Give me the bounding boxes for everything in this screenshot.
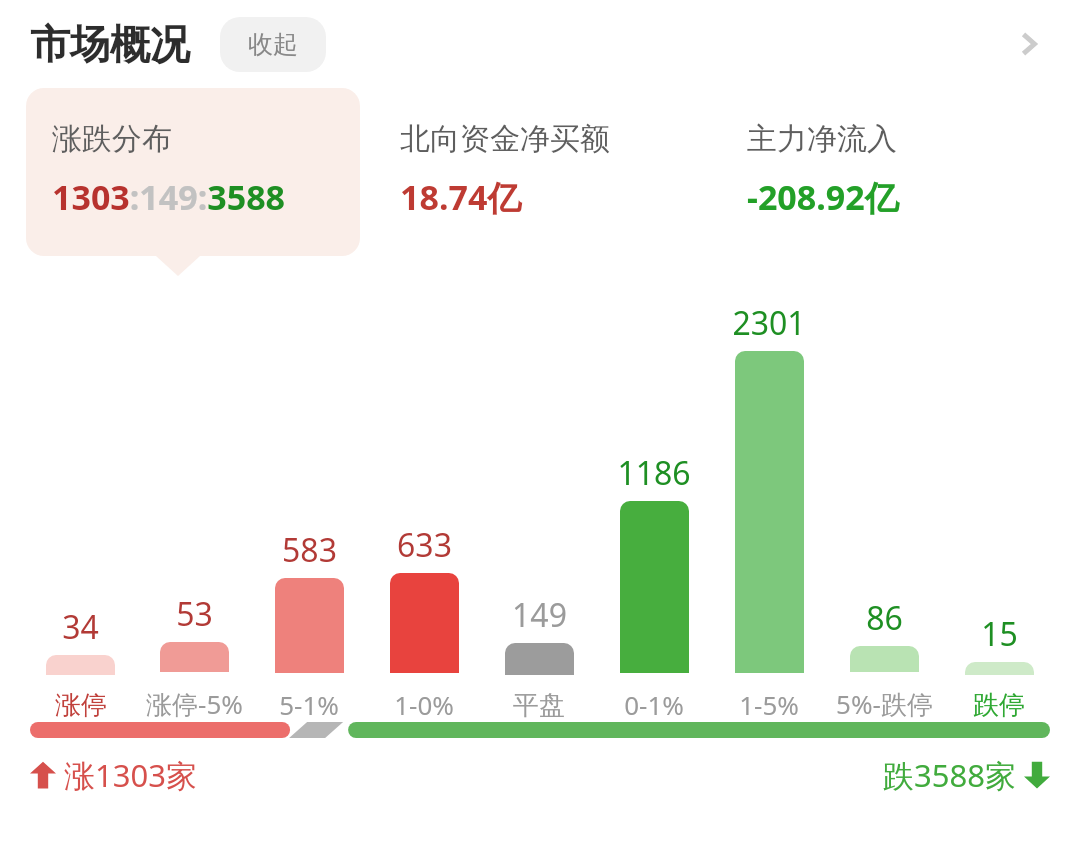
other: 上涨	[30, 760, 56, 790]
staticText: 18.74亿	[400, 174, 522, 220]
staticText: 5%-跌停	[836, 686, 933, 722]
staticText: 涨1303家	[64, 754, 197, 796]
staticText: 15	[981, 612, 1018, 656]
staticText: 86	[866, 596, 903, 640]
staticText: 1-0%	[394, 687, 454, 722]
staticText: 涨停	[55, 689, 107, 722]
staticText: 涨停-5%	[146, 686, 243, 722]
staticText: 1303:149:3588	[52, 174, 286, 220]
staticText: 5-1%	[279, 687, 339, 722]
other: 下跌	[1024, 760, 1050, 790]
staticText: 583	[282, 528, 337, 572]
staticText: 0-1%	[624, 687, 684, 722]
staticText: 北向资金净买额	[400, 120, 610, 158]
staticText: 1186	[617, 451, 691, 495]
staticText: 涨跌分布	[52, 120, 172, 158]
staticText: 149	[512, 593, 567, 637]
button[interactable]: 收起	[220, 17, 326, 72]
button[interactable]: 主力净流入	[721, 88, 1054, 256]
staticText: 收起	[248, 29, 298, 60]
button[interactable]: 查看更多	[1000, 16, 1056, 72]
staticText: 跌3588家	[883, 754, 1016, 796]
staticText: 53	[176, 592, 213, 636]
staticText: 主力净流入	[747, 120, 897, 158]
button[interactable]: 北向资金净买额	[374, 88, 707, 256]
staticText: -208.92亿	[747, 174, 899, 220]
staticText: 34	[62, 605, 99, 649]
staticText: 1-5%	[739, 687, 799, 722]
staticText: 633	[397, 523, 452, 567]
staticText: 跌停	[973, 689, 1025, 722]
staticText: 2301	[732, 301, 806, 345]
staticText: 市场概况	[30, 19, 190, 69]
button[interactable]: 涨跌分布	[26, 88, 360, 256]
staticText: 平盘	[513, 689, 565, 722]
